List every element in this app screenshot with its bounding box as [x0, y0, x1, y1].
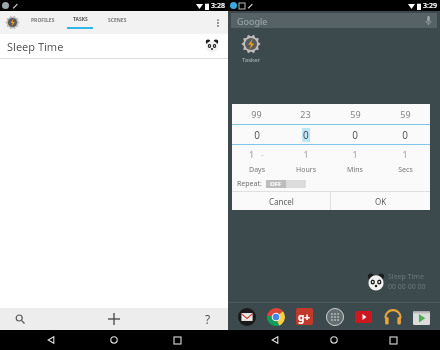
button[interactable]: Tasker	[4, 14, 21, 31]
staticText: Cancel	[269, 196, 294, 207]
button[interactable]: Google	[231, 13, 437, 28]
button[interactable]: App	[411, 306, 432, 327]
button[interactable]: Sleep Time	[367, 272, 426, 292]
staticText: Sleep Time	[388, 272, 424, 282]
button[interactable]: Help	[188, 308, 228, 330]
button[interactable]: More options	[208, 13, 228, 33]
staticText: 23	[300, 108, 311, 120]
button[interactable]: Add	[99, 308, 129, 330]
staticText: 1	[402, 148, 408, 160]
staticText: 3:28	[211, 1, 225, 11]
staticText: 59	[400, 108, 411, 120]
button[interactable]: OK	[331, 192, 430, 210]
button[interactable]: Recent apps	[165, 330, 189, 350]
button[interactable]: App	[324, 306, 345, 327]
staticText: Mins	[347, 165, 363, 175]
button[interactable]: TASKS	[66, 16, 94, 29]
button[interactable]: App	[265, 306, 286, 327]
staticText: 0	[352, 128, 358, 142]
staticText: 1	[303, 148, 309, 160]
button[interactable]: Home	[102, 330, 126, 350]
button[interactable]: Back	[263, 330, 287, 350]
button[interactable]: Recent apps	[381, 330, 405, 350]
staticText: Google	[237, 15, 268, 27]
staticText: TASKS	[73, 16, 88, 23]
staticText: ?	[205, 311, 211, 327]
staticText: OK	[375, 196, 387, 207]
staticText: -	[261, 149, 264, 160]
staticText: 0	[303, 128, 309, 142]
staticText: Secs	[398, 165, 413, 175]
button[interactable]: PROFILES	[29, 17, 57, 28]
button[interactable]: Tasker	[235, 34, 267, 64]
staticText: Tasker	[242, 56, 261, 64]
button[interactable]: SCENES	[103, 17, 131, 28]
staticText: OFF	[270, 180, 282, 188]
staticText: SCENES	[108, 17, 127, 24]
staticText: 99	[251, 108, 262, 120]
staticText: 1	[352, 148, 358, 160]
staticText: Sleep Time	[7, 39, 64, 54]
button[interactable]: Home	[322, 330, 346, 350]
staticText: 0	[254, 128, 260, 142]
staticText: Days	[249, 165, 265, 175]
staticText: 0	[402, 128, 408, 142]
button[interactable]: App	[382, 306, 403, 327]
button[interactable]: Back	[39, 330, 63, 350]
staticText: Repeat:	[237, 179, 262, 189]
button[interactable]: App	[294, 306, 315, 327]
button[interactable]: App	[353, 306, 374, 327]
other: Voice search	[426, 16, 431, 25]
button[interactable]: Sleep Time	[0, 34, 228, 58]
staticText: g+	[298, 310, 311, 324]
button[interactable]: Search	[0, 308, 40, 330]
button[interactable]: Cancel	[232, 192, 330, 210]
button[interactable]: App	[236, 306, 257, 327]
button[interactable]: OFF	[266, 180, 306, 188]
staticText: 3:29	[423, 1, 437, 11]
staticText: PROFILES	[31, 17, 55, 24]
staticText: 1	[249, 148, 255, 160]
staticText: 59	[350, 108, 361, 120]
staticText: Hours	[296, 165, 316, 175]
staticText: 00 00 00 00	[388, 282, 426, 292]
